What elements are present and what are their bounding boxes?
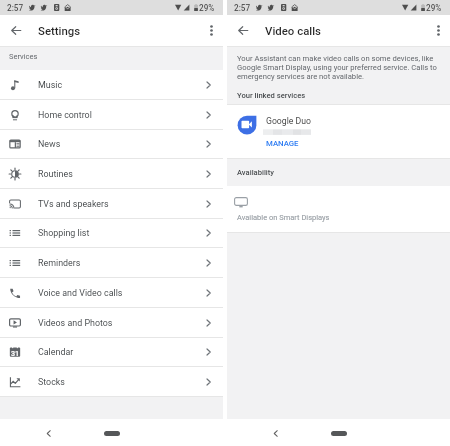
staticText: Music <box>38 80 63 90</box>
staticText: 29% <box>199 3 215 13</box>
button[interactable]: Routines <box>0 159 223 188</box>
button[interactable]: Stocks <box>0 367 223 396</box>
staticText: Shopping list <box>38 228 90 238</box>
button[interactable]: Google Duo <box>227 105 450 158</box>
button[interactable]: 31 <box>0 338 223 366</box>
button[interactable]: MANAGE <box>266 139 299 148</box>
staticText: Available on Smart Displays <box>237 213 330 222</box>
staticText: Google Duo <box>266 116 312 126</box>
staticText: Your linked services <box>237 91 306 100</box>
staticText: Reminders <box>38 258 81 268</box>
staticText: Calendar <box>38 347 74 357</box>
button[interactable]: Videos and Photos <box>0 308 223 337</box>
staticText: News <box>38 139 61 149</box>
button[interactable]: Music <box>0 70 223 99</box>
staticText: Services <box>9 52 38 61</box>
staticText: 31 <box>11 349 20 357</box>
button[interactable]: Shopping list <box>0 219 223 247</box>
button[interactable]: More options <box>199 15 223 46</box>
button[interactable]: News <box>0 130 223 158</box>
button[interactable]: Home <box>104 431 120 436</box>
button[interactable]: Navigate up <box>0 15 31 46</box>
staticText: Home control <box>38 110 92 120</box>
button[interactable]: Home control <box>0 100 223 129</box>
button[interactable]: Home <box>331 431 347 436</box>
staticText: Your Assistant can make video calls on s… <box>237 54 439 81</box>
staticText: 2:57 <box>234 3 251 13</box>
staticText: Video calls <box>265 24 322 37</box>
staticText: Routines <box>38 169 73 179</box>
staticText: Availability <box>237 168 275 177</box>
staticText: 2:57 <box>7 3 24 13</box>
button[interactable]: TVs and speakers <box>0 189 223 218</box>
button[interactable]: Reminders <box>0 248 223 277</box>
button[interactable]: Navigate up <box>227 15 258 46</box>
button[interactable]: Back <box>41 425 55 442</box>
staticText: Videos and Photos <box>38 318 113 328</box>
staticText: Stocks <box>38 377 65 387</box>
staticText: TVs and speakers <box>38 199 109 209</box>
staticText: Settings <box>38 24 81 37</box>
staticText: Voice and Video calls <box>38 288 123 298</box>
button[interactable]: Back <box>268 425 282 442</box>
button[interactable]: More options <box>426 15 450 46</box>
button[interactable]: Voice and Video calls <box>0 278 223 307</box>
staticText: 29% <box>426 3 442 13</box>
